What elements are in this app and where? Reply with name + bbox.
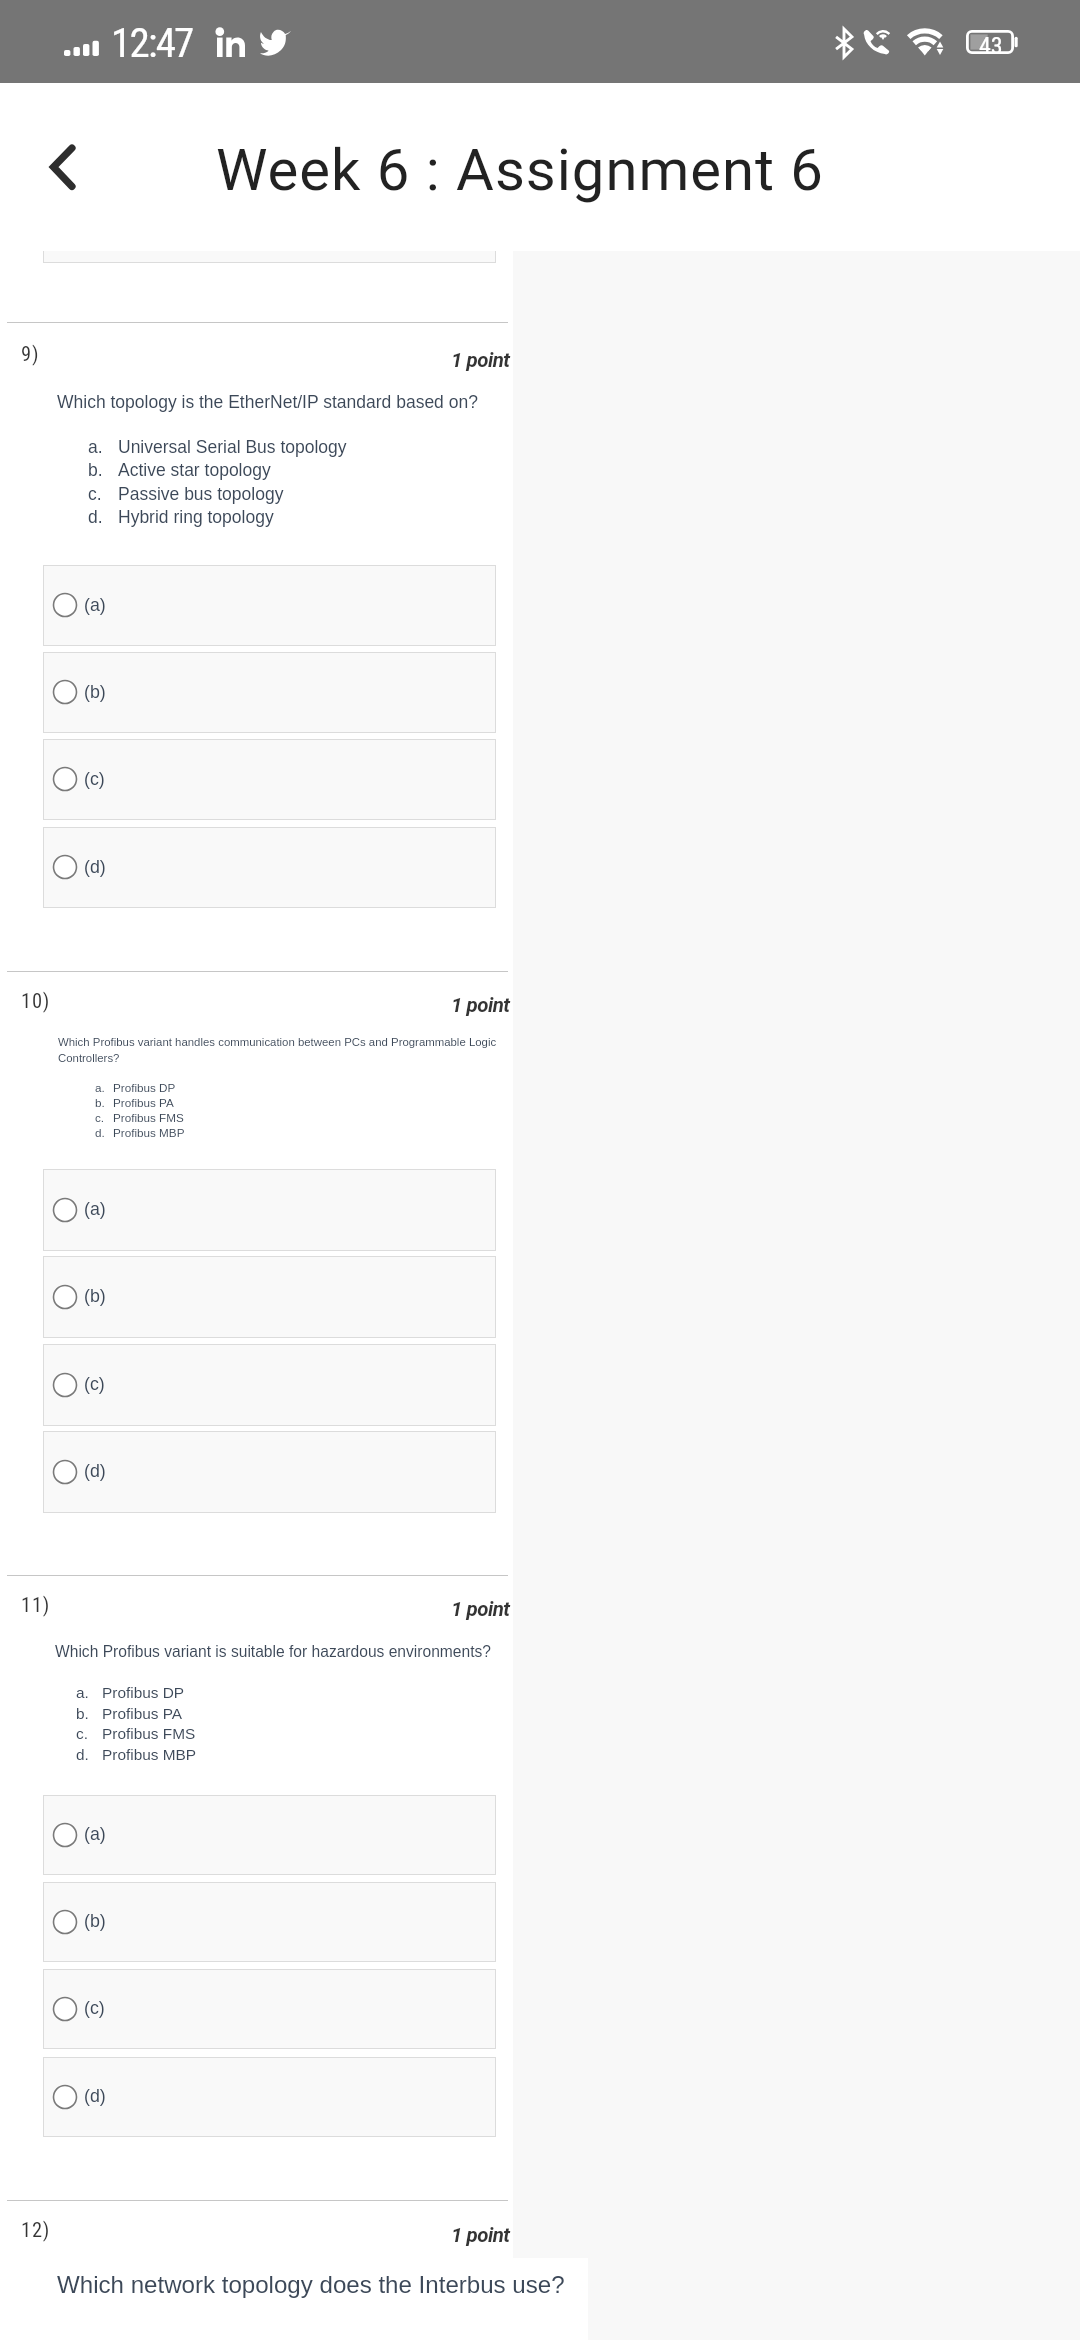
button[interactable]: (b) xyxy=(43,1256,496,1338)
button[interactable]: Back xyxy=(20,113,90,221)
staticText: Active star topology xyxy=(118,460,271,480)
staticText: Hybrid ring topology xyxy=(118,507,274,527)
staticText: 1 point xyxy=(451,1597,510,1621)
staticText: (a) xyxy=(84,1824,106,1844)
staticText: 11) xyxy=(21,1593,51,1617)
staticText: d. xyxy=(76,1746,89,1763)
button[interactable]: (c) xyxy=(43,1344,496,1426)
staticText: a. xyxy=(95,1081,105,1094)
staticText: Passive bus topology xyxy=(118,484,284,504)
staticText: Which Profibus variant is suitable for h… xyxy=(55,1643,491,1660)
button[interactable]: (d) xyxy=(43,827,496,908)
staticText: c. xyxy=(88,484,102,504)
staticText: c. xyxy=(95,1111,105,1124)
staticText: Profibus MBP xyxy=(113,1126,185,1139)
staticText: 1 point xyxy=(451,348,510,372)
staticText: 43 xyxy=(979,32,1003,56)
staticText: 9) xyxy=(21,342,40,366)
staticText: Profibus PA xyxy=(102,1705,183,1722)
staticText: c. xyxy=(76,1725,88,1742)
staticText: (c) xyxy=(84,1374,105,1394)
staticText: 1 point xyxy=(451,993,510,1017)
staticText: 12:47 xyxy=(111,19,193,67)
button[interactable]: (c) xyxy=(43,739,496,820)
staticText: Profibus DP xyxy=(113,1081,176,1094)
staticText: Which topology is the EtherNet/IP standa… xyxy=(57,392,478,412)
button[interactable]: (b) xyxy=(43,652,496,733)
staticText: Profibus FMS xyxy=(113,1111,184,1124)
staticText: b. xyxy=(88,460,103,480)
staticText: (a) xyxy=(84,595,106,615)
staticText: d. xyxy=(95,1126,105,1139)
button[interactable]: (d) xyxy=(43,2057,496,2137)
staticText: (b) xyxy=(84,1911,106,1931)
staticText: a. xyxy=(76,1684,89,1701)
staticText: (b) xyxy=(84,1286,106,1306)
staticText: Universal Serial Bus topology xyxy=(118,437,347,457)
button[interactable]: (a) xyxy=(43,1169,496,1251)
staticText: Profibus FMS xyxy=(102,1725,196,1742)
button[interactable]: (b) xyxy=(43,1882,496,1962)
button[interactable]: (d) xyxy=(43,1431,496,1513)
staticText: (d) xyxy=(84,2086,106,2106)
button[interactable]: (c) xyxy=(43,1969,496,2049)
staticText: Profibus PA xyxy=(113,1096,174,1109)
staticText: (b) xyxy=(84,682,106,702)
staticText: Week 6 : Assignment 6 xyxy=(216,136,824,204)
staticText: d. xyxy=(88,507,103,527)
staticText: a. xyxy=(88,437,103,457)
staticText: (c) xyxy=(84,769,105,789)
staticText: Profibus DP xyxy=(102,1684,185,1701)
staticText: (d) xyxy=(84,1461,106,1481)
staticText: b. xyxy=(95,1096,105,1109)
staticText: (d) xyxy=(84,857,106,877)
staticText: Profibus MBP xyxy=(102,1746,197,1763)
staticText: 1 point xyxy=(451,2223,510,2247)
staticText: b. xyxy=(76,1705,89,1722)
staticText: (c) xyxy=(84,1998,105,2018)
staticText: (a) xyxy=(84,1199,106,1219)
staticText: Controllers? xyxy=(58,1052,120,1065)
staticText: 12) xyxy=(21,2218,51,2242)
button[interactable]: (a) xyxy=(43,565,496,646)
staticText: 10) xyxy=(21,989,51,1013)
staticText: Which Profibus variant handles communica… xyxy=(58,1036,497,1049)
staticText: Which network topology does the Interbus… xyxy=(57,2271,565,2298)
button[interactable]: (a) xyxy=(43,1795,496,1875)
